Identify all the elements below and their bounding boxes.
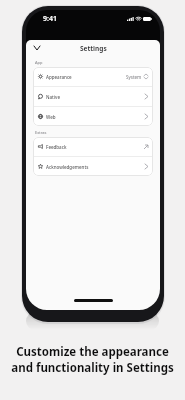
staticText: Settings (80, 44, 107, 53)
button[interactable]: Web (33, 107, 153, 126)
button[interactable]: Feedback (33, 137, 153, 156)
button[interactable]: Acknowledgements (33, 157, 153, 176)
staticText: System (126, 74, 142, 80)
staticText: Web (46, 114, 56, 120)
staticText: Feedback (46, 144, 67, 150)
button[interactable] (33, 44, 41, 52)
staticText: Extras (35, 130, 47, 135)
staticText: Native (46, 94, 60, 100)
staticText: and functionality in Settings (11, 360, 174, 376)
button[interactable]: Appearance (33, 67, 153, 86)
staticText: 9:41 (43, 14, 57, 24)
staticText: Customize the appearance (16, 344, 169, 360)
button[interactable]: Native (33, 87, 153, 106)
staticText: Acknowledgements (46, 164, 89, 170)
staticText: Appearance (46, 74, 72, 80)
staticText: App (35, 60, 43, 65)
